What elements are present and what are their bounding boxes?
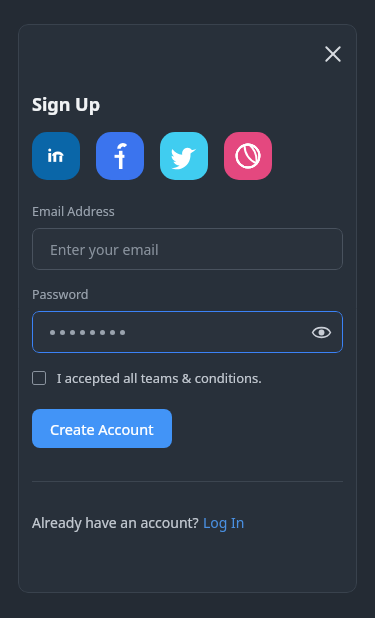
button[interactable]: Show password (307, 318, 335, 346)
button[interactable]: Facebook (96, 132, 144, 180)
staticText: Log In (203, 513, 245, 532)
staticText: Already have an account? (32, 513, 203, 532)
staticText: Password (32, 286, 89, 303)
staticText: I accepted all teams & conditions. (57, 369, 262, 387)
staticText: Create Account (50, 419, 154, 439)
staticText: Sign Up (32, 92, 101, 117)
button[interactable]: I accepted all teams & conditions. (32, 369, 262, 387)
button[interactable]: Show password (32, 311, 343, 353)
button[interactable]: Log In (203, 513, 245, 532)
button[interactable]: LinkedIn (32, 132, 80, 180)
button[interactable]: Twitter (160, 132, 208, 180)
button[interactable]: Create Account (32, 409, 172, 448)
staticText: Email Address (32, 203, 115, 220)
staticText: Enter your email (50, 240, 159, 259)
button[interactable]: Close (316, 37, 350, 71)
button[interactable]: Enter your email (32, 228, 343, 270)
button[interactable]: Dribbble (224, 132, 272, 180)
